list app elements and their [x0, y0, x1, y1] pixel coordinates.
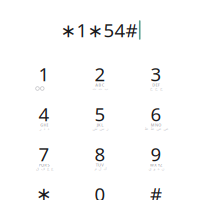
- staticText: ∗: [36, 183, 52, 200]
- button[interactable]: 4 GHI: [17, 103, 71, 143]
- staticText: 4: [38, 102, 49, 126]
- staticText: DEF: [152, 82, 160, 88]
- staticText: #: [150, 182, 162, 200]
- staticText: ز س ش: [92, 126, 108, 131]
- staticText: د ذ ر: [39, 126, 49, 131]
- staticText: 7: [38, 142, 49, 166]
- staticText: ABC: [95, 82, 105, 88]
- button[interactable]: 3 DEF: [129, 63, 183, 103]
- button[interactable]: 5 JKL: [73, 103, 127, 143]
- staticText: ص ض ط ظ: [144, 126, 168, 131]
- staticText: 3: [150, 62, 161, 86]
- staticText: 6: [150, 102, 161, 126]
- button[interactable]: 7 PQRS: [17, 143, 71, 183]
- staticText: ن ه و ي: [148, 166, 164, 171]
- button[interactable]: 9 WXYZ: [129, 143, 183, 183]
- button[interactable]: 8 TUV: [73, 143, 127, 183]
- staticText: 9: [150, 142, 161, 166]
- button[interactable]: 0 +: [73, 183, 127, 200]
- staticText: WXYZ: [150, 162, 162, 168]
- staticText: 1: [38, 62, 49, 86]
- staticText: 5: [94, 102, 105, 126]
- staticText: ∗1∗54#: [60, 18, 137, 42]
- staticText: MNO: [151, 122, 161, 128]
- staticText: ب ت ث: [92, 86, 108, 91]
- staticText: PQRS: [39, 162, 49, 168]
- staticText: 0: [94, 182, 105, 200]
- staticText: ك ل م: [94, 166, 106, 171]
- staticText: TUV: [96, 162, 104, 168]
- button[interactable]: 2 ABC: [73, 63, 127, 103]
- staticText: 2: [94, 62, 105, 86]
- staticText: JKL: [97, 122, 103, 128]
- staticText: ج ح خ: [149, 86, 162, 91]
- button[interactable]: #: [129, 183, 183, 200]
- staticText: ع غ ف ق: [35, 166, 52, 171]
- button[interactable]: 6 MNO: [129, 103, 183, 143]
- button[interactable]: 1: [17, 63, 71, 103]
- staticText: 8: [94, 142, 105, 166]
- staticText: GHI: [40, 122, 48, 128]
- button[interactable]: ∗: [17, 183, 71, 200]
